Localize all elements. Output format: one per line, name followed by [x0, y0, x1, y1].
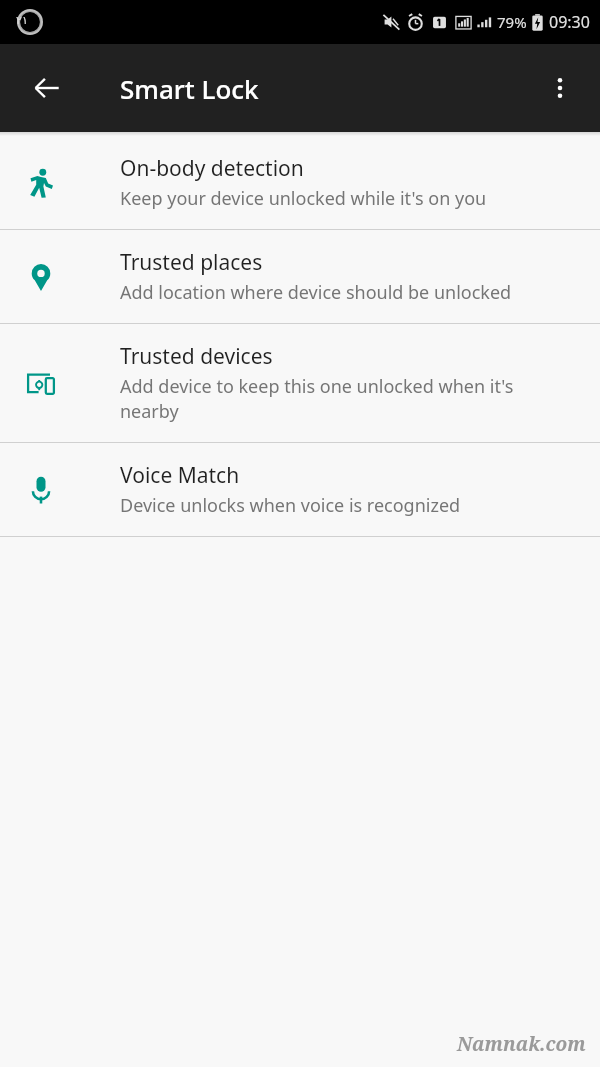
staticText: Smart Lock: [120, 71, 259, 106]
button[interactable]: Back: [19, 60, 75, 116]
button[interactable]: On-body detection: [0, 136, 600, 229]
button[interactable]: Voice Match: [0, 443, 600, 536]
button[interactable]: More options: [532, 60, 588, 116]
staticText: Namnak.com: [457, 1031, 586, 1057]
staticText: ۲۱: [16, 14, 28, 27]
staticText: Add device to keep this one unlocked whe…: [120, 374, 514, 399]
button[interactable]: Trusted devices: [0, 324, 600, 442]
staticText: Add location where device should be unlo…: [120, 280, 512, 305]
staticText: Device unlocks when voice is recognized: [120, 493, 461, 518]
staticText: 79%: [497, 12, 527, 32]
staticText: Voice Match: [120, 461, 240, 490]
staticText: nearby: [120, 399, 179, 424]
staticText: 09:30: [549, 11, 590, 33]
staticText: Trusted places: [120, 248, 263, 277]
staticText: Trusted devices: [120, 342, 273, 371]
staticText: On-body detection: [120, 154, 304, 183]
button[interactable]: Trusted places: [0, 230, 600, 323]
staticText: Keep your device unlocked while it's on …: [120, 186, 487, 211]
